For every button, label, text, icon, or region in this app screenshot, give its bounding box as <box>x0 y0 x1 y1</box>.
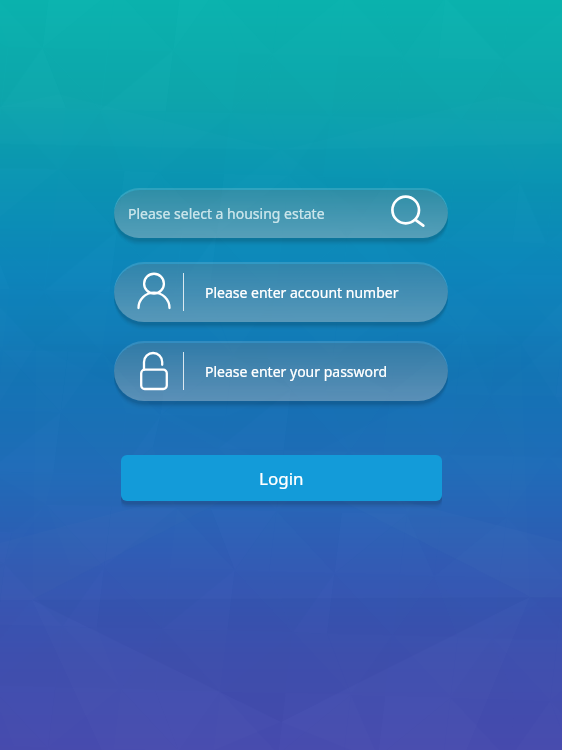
staticText: Please enter account number <box>205 283 448 302</box>
button[interactable]: Please enter account number <box>114 262 448 322</box>
staticText: Login <box>259 467 304 490</box>
button[interactable]: Please enter your password <box>114 341 448 401</box>
staticText: Please enter your password <box>205 362 448 381</box>
other: Search <box>385 188 431 238</box>
button[interactable]: Please select a housing estate <box>114 188 448 238</box>
button[interactable]: Login <box>121 455 442 501</box>
staticText: Please select a housing estate <box>128 204 385 223</box>
